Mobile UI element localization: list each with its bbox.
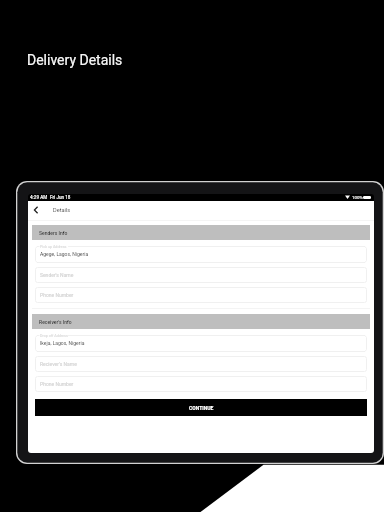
- button[interactable]: Phone Number: [35, 287, 367, 303]
- staticText: Details: [53, 207, 71, 214]
- staticText: Receiver's Info: [39, 319, 72, 325]
- button[interactable]: Back: [30, 204, 42, 216]
- staticText: Fri Jun 18: [50, 195, 71, 200]
- button[interactable]: Reciever's Name: [35, 356, 367, 372]
- button[interactable]: CONTINUE: [35, 399, 367, 416]
- button[interactable]: Phone Number: [35, 376, 367, 392]
- staticText: Pick up Address: [40, 245, 67, 249]
- button[interactable]: Receiver's Info: [32, 314, 370, 329]
- button[interactable]: Pick up Address: [35, 246, 367, 263]
- staticText: Delivery Details: [27, 52, 123, 68]
- staticText: Reciever's Name: [40, 361, 77, 367]
- staticText: Phone Number: [40, 292, 74, 298]
- button[interactable]: Drop off Address: [35, 335, 367, 352]
- staticText: 100%: [352, 195, 363, 200]
- button[interactable]: Senders Info: [32, 225, 370, 240]
- staticText: 4:29 AM: [30, 195, 48, 200]
- staticText: Phone Number: [40, 381, 74, 387]
- staticText: Senders Info: [39, 230, 68, 236]
- staticText: Sender's Name: [40, 272, 74, 278]
- staticText: Agege, Lagos, Nigeria: [40, 251, 89, 257]
- staticText: Drop off Address: [40, 334, 68, 338]
- staticText: CONTINUE: [189, 405, 214, 411]
- button[interactable]: Sender's Name: [35, 267, 367, 283]
- staticText: Ikeja, Lagos, Nigeria: [40, 340, 85, 346]
